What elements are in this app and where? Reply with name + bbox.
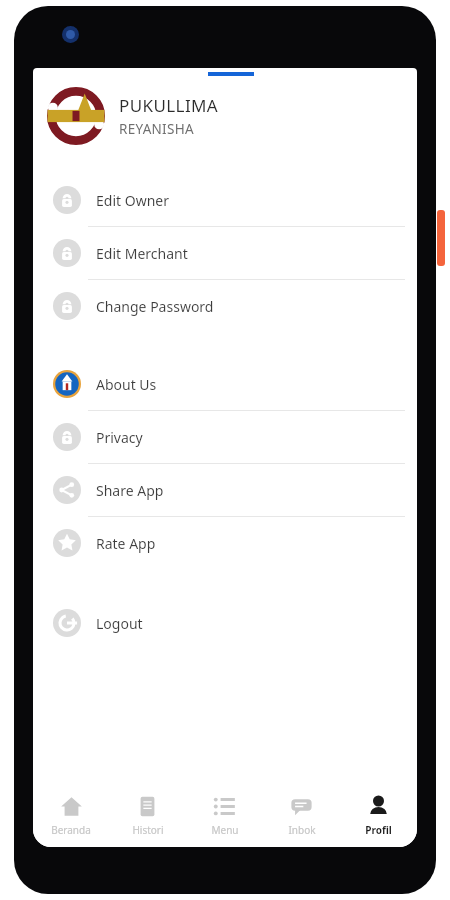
button[interactable]: Change Password	[33, 280, 417, 332]
button[interactable]: Profil	[340, 785, 417, 847]
button[interactable]: Edit Owner	[33, 174, 417, 226]
staticText: Edit Merchant	[96, 244, 188, 263]
button[interactable]: About Us	[33, 358, 417, 410]
staticText: Privacy	[96, 428, 143, 447]
staticText: About Us	[96, 375, 157, 394]
staticText: Rate App	[96, 534, 156, 553]
other: Camera	[62, 26, 79, 43]
staticText: Menu	[211, 823, 239, 837]
staticText: Beranda	[51, 823, 91, 837]
staticText: PUKULLIMA	[119, 94, 219, 117]
button[interactable]: Inbok	[263, 785, 340, 847]
staticText: REYANISHA	[119, 120, 194, 138]
staticText: Profil	[365, 823, 392, 837]
staticText: Histori	[132, 823, 164, 837]
staticText: Edit Owner	[96, 191, 169, 210]
button[interactable]: Logout	[33, 597, 417, 649]
button[interactable]: Share App	[33, 464, 417, 516]
button[interactable]: Rate App	[33, 517, 417, 569]
button[interactable]: Edit Merchant	[33, 227, 417, 279]
button[interactable]: Beranda	[33, 785, 109, 847]
button[interactable]: PUKULLIMA	[33, 80, 417, 152]
button[interactable]: Privacy	[33, 411, 417, 463]
staticText: Logout	[96, 614, 143, 633]
button[interactable]: Menu	[186, 785, 263, 847]
staticText: Inbok	[288, 823, 316, 837]
staticText: Change Password	[96, 297, 214, 316]
button[interactable]: Histori	[109, 785, 186, 847]
staticText: Share App	[96, 481, 164, 500]
